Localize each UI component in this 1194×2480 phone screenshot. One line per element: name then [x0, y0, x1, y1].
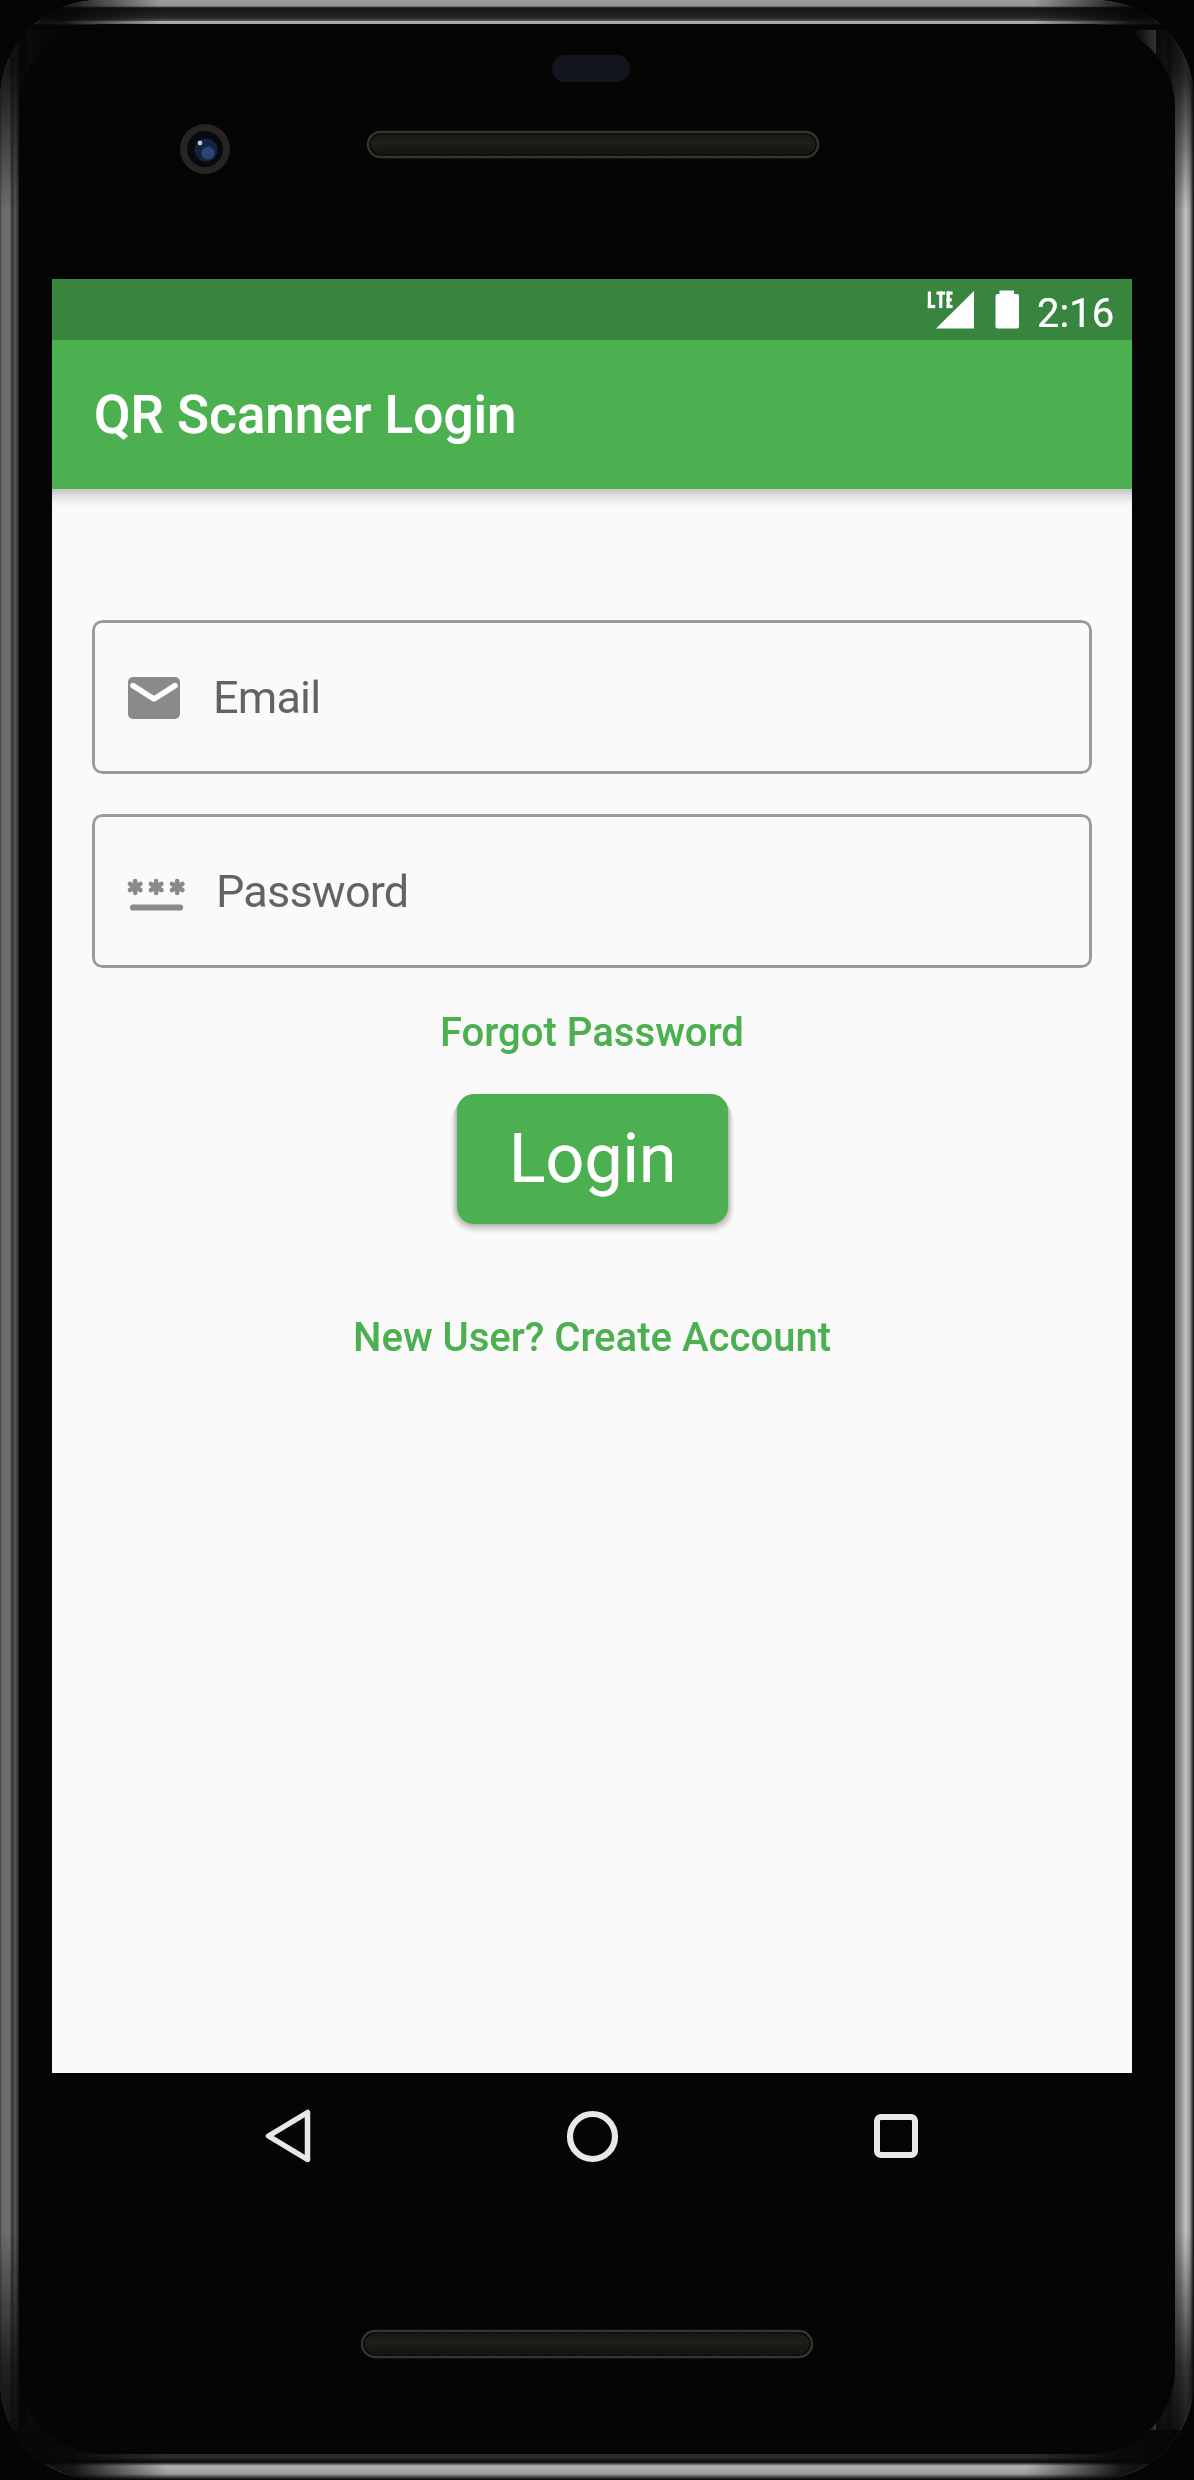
button[interactable]: Recent apps — [820, 2072, 972, 2200]
staticText: 2:16 — [1037, 290, 1115, 337]
staticText: New User? Create Account — [353, 1314, 832, 1361]
button[interactable]: Forgot Password — [416, 1001, 768, 1064]
button[interactable]: Login — [457, 1094, 728, 1224]
staticText: Password — [216, 865, 409, 918]
button[interactable]: Home — [516, 2072, 668, 2200]
staticText: Forgot Password — [440, 1009, 744, 1056]
staticText: Email — [213, 671, 321, 724]
staticText: QR Scanner Login — [94, 384, 517, 446]
button[interactable]: Password — [92, 814, 1092, 968]
button[interactable]: Email — [92, 620, 1092, 774]
button[interactable]: New User? Create Account — [329, 1306, 856, 1369]
button[interactable]: Back — [212, 2072, 364, 2200]
staticText: Login — [509, 1119, 677, 1199]
